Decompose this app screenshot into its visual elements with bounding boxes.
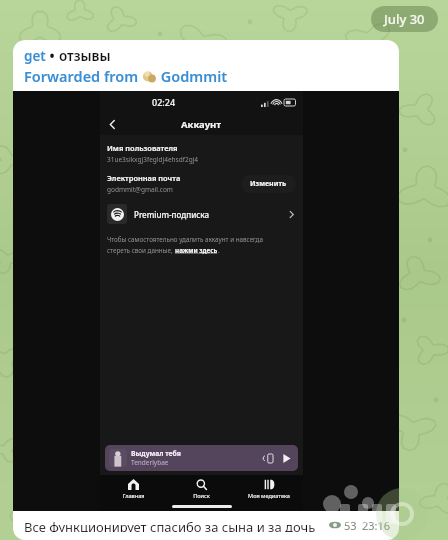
staticText: . (218, 246, 220, 255)
staticText: 23:16 (362, 518, 391, 532)
button[interactable]: Главная (100, 479, 167, 500)
button[interactable]: нажми здесь (175, 246, 218, 255)
button[interactable]: Connect to a device (261, 451, 275, 465)
button[interactable]: Premium-подписка (107, 204, 296, 224)
staticText: Godmmit (157, 66, 228, 86)
staticText: Аккаунт (181, 118, 222, 131)
staticText: Изменить (250, 179, 287, 189)
staticText: 02:24 (152, 96, 176, 108)
staticText: Premium-подписка (134, 209, 287, 220)
staticText: Поиск (193, 492, 210, 500)
button[interactable]: Все функционирует спасибо за сына и за д… (13, 511, 399, 540)
staticText: Чтобы самостоятельно удалить аккаунт и н… (107, 235, 263, 244)
staticText: 53 (344, 518, 357, 532)
staticText: Все функционирует спасибо за сына и за д… (24, 518, 329, 532)
button[interactable]: Выдумал тебя (105, 445, 298, 471)
button[interactable]: Изменить (241, 175, 296, 193)
staticText: 31ue3sikxgj3fegldj4ehsdf2gj4 (107, 155, 199, 164)
staticText: Forwarded from (24, 66, 142, 86)
staticText: Tenderlybae (131, 458, 169, 467)
button[interactable]: Моя медиатека (235, 479, 303, 500)
staticText: • (46, 47, 59, 65)
button[interactable]: Поиск (167, 479, 235, 500)
staticText: стереть свои данные, (107, 246, 175, 255)
staticText: July 30 (384, 10, 425, 28)
staticText: Имя пользователя (107, 143, 178, 153)
staticText: Главная (122, 492, 145, 500)
button[interactable]: Back (103, 115, 121, 133)
staticText: отзывы (59, 47, 111, 65)
button[interactable]: July 30 (371, 6, 438, 32)
button[interactable]: Play (278, 450, 294, 466)
staticText: Выдумал тебя (131, 449, 181, 458)
staticText: godmmit@gmail.com (107, 185, 173, 194)
staticText: Моя медиатека (248, 492, 290, 500)
staticText: Электронная почта (107, 173, 181, 183)
staticText: get (24, 47, 46, 65)
button[interactable]: get (13, 40, 399, 91)
